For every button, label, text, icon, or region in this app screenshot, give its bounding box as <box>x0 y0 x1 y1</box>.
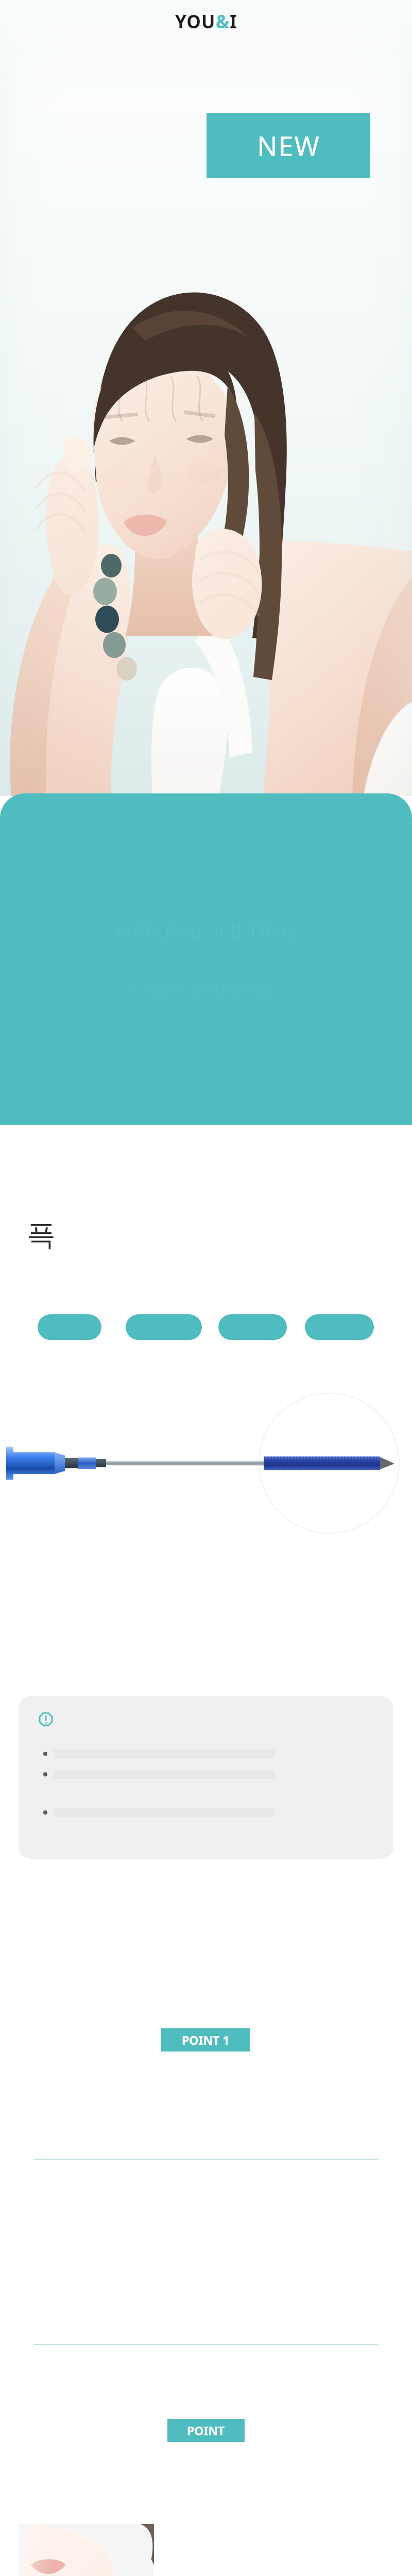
button[interactable]: NEW <box>207 113 370 178</box>
button[interactable] <box>19 2524 154 2576</box>
staticText: YOU <box>175 9 216 34</box>
button[interactable]: POINT <box>167 2419 245 2442</box>
button[interactable] <box>38 1314 101 1340</box>
staticText: NEW <box>257 127 320 164</box>
button[interactable] <box>126 1314 202 1340</box>
button[interactable]: POINT 1 <box>161 2028 250 2052</box>
staticText: 픅 <box>27 1217 56 1253</box>
button[interactable] <box>305 1314 374 1340</box>
button[interactable] <box>218 1314 287 1340</box>
staticText: I <box>230 9 237 34</box>
button[interactable]: YOU <box>175 9 237 34</box>
staticText: POINT 1 <box>182 2032 230 2048</box>
staticText: & <box>216 9 230 34</box>
staticText: POINT <box>187 2422 225 2438</box>
